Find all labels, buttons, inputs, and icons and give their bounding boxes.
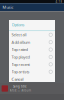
staticText: Options — [12, 22, 25, 27]
button[interactable]: Top rated — [9, 46, 55, 53]
staticText: Cancel — [12, 76, 24, 82]
button[interactable]: Top recent — [9, 61, 55, 68]
staticText: Music — [2, 4, 13, 10]
staticText: Add album — [12, 39, 31, 45]
staticText: Select all — [12, 32, 27, 37]
staticText: Artist — Album — [9, 89, 30, 92]
staticText: Top recent — [12, 62, 30, 67]
staticText: Top rated — [12, 47, 28, 52]
button[interactable]: Select all — [9, 31, 55, 38]
staticText: Top played — [12, 54, 30, 60]
staticText: Song title — [13, 85, 27, 88]
button[interactable]: Cancel — [9, 75, 55, 83]
button[interactable]: Add album — [9, 38, 55, 46]
staticText: 4:18 — [55, 0, 62, 3]
button[interactable]: Top artists — [9, 68, 55, 75]
button[interactable]: Top played — [9, 53, 55, 61]
staticText: Top artists — [12, 69, 30, 74]
